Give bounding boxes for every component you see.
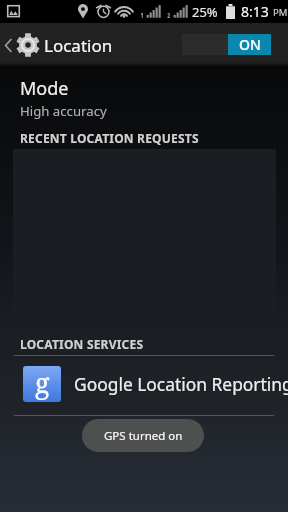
staticText: 8:13 [241,2,269,21]
staticText: PM [273,6,288,19]
staticText: LOCATION SERVICES [20,336,144,352]
staticText: High accuracy [20,102,107,120]
button[interactable]: GPS turned on [82,419,204,452]
button[interactable]: Mode [0,72,288,127]
staticText: ON [239,35,261,54]
staticText: Google Location Reporting [74,372,288,396]
staticText: g [35,366,50,400]
staticText: Location [44,34,113,57]
staticText: 25% [192,3,218,21]
staticText: Mode [20,76,69,101]
button[interactable]: Location switch, on [182,34,271,55]
staticText: GPS turned on [104,428,183,444]
button[interactable]: Navigate up [0,23,40,67]
button[interactable]: g [0,354,288,413]
staticText: RECENT LOCATION REQUESTS [20,130,199,146]
